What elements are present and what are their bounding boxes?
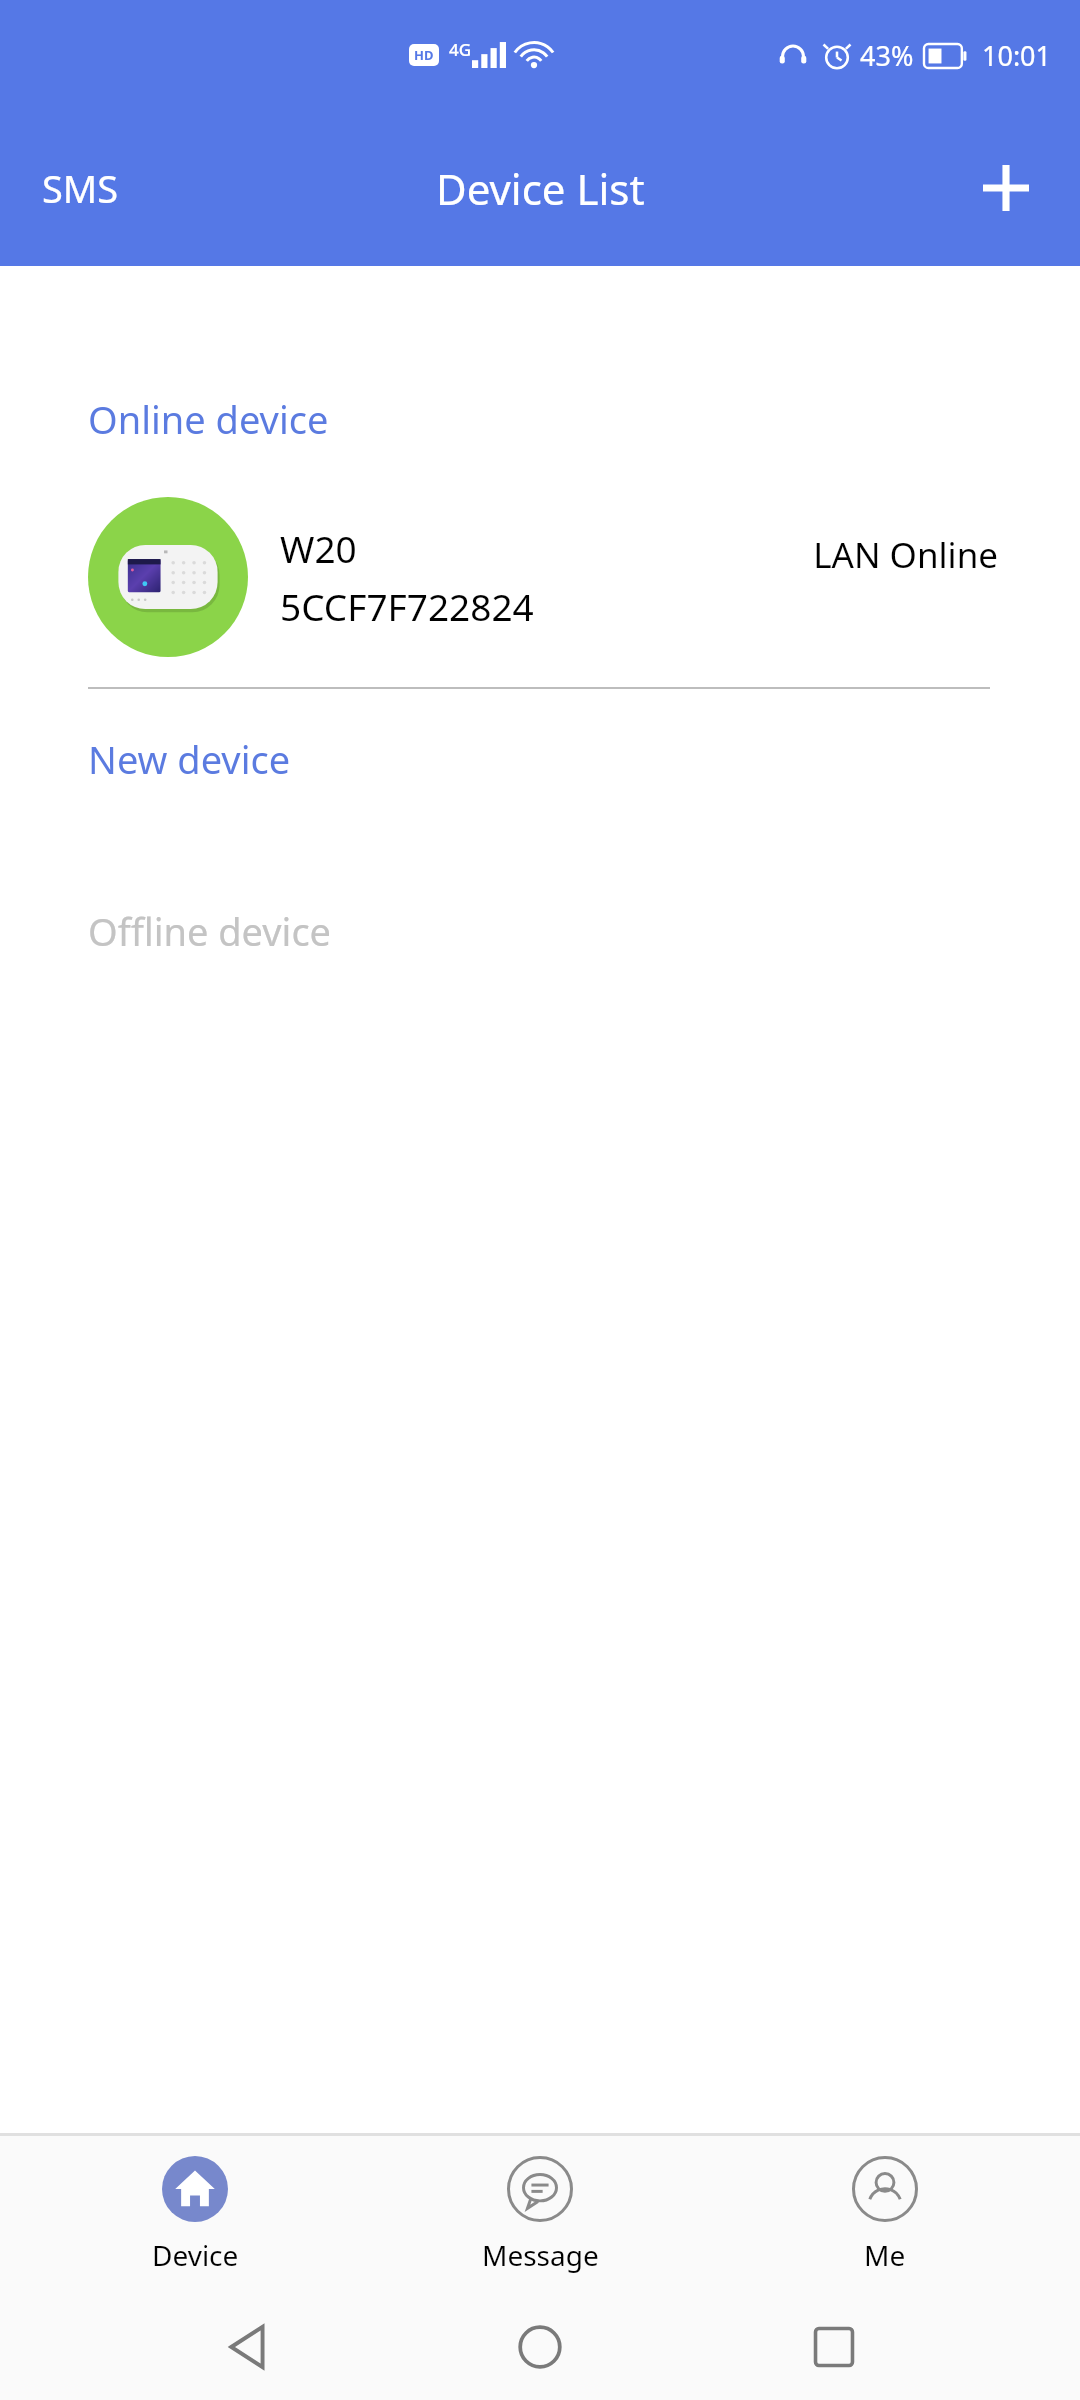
button[interactable]: Me (735, 2136, 1035, 2293)
staticText: HD (414, 46, 434, 64)
button[interactable]: New device (0, 731, 1080, 787)
staticText: Device (152, 2236, 239, 2274)
staticText: 5CCF7F722824 (280, 581, 534, 631)
staticText: 43% (860, 37, 914, 74)
button[interactable]: Online device (0, 391, 1080, 447)
staticText: W20 (280, 523, 357, 573)
staticText: Me (864, 2236, 906, 2274)
button[interactable]: Back (198, 2299, 294, 2395)
staticText: Device List (436, 160, 645, 217)
button[interactable]: SMS (30, 152, 131, 224)
staticText: Message (482, 2236, 599, 2274)
staticText: SMS (42, 162, 119, 214)
staticText: 10:01 (982, 37, 1052, 74)
staticText: Offline device (88, 905, 332, 957)
staticText: Online device (88, 393, 329, 445)
staticText: LAN Online (813, 531, 998, 579)
button[interactable]: Message (390, 2136, 690, 2293)
button[interactable]: W20 (0, 487, 1080, 667)
button[interactable]: Add device (968, 150, 1044, 226)
button[interactable]: Offline device (0, 903, 1080, 959)
staticText: New device (88, 733, 291, 785)
staticText: 4G (449, 38, 472, 61)
button[interactable]: Recent apps (786, 2299, 882, 2395)
button[interactable]: Device (45, 2136, 345, 2293)
button[interactable]: Home (492, 2299, 588, 2395)
